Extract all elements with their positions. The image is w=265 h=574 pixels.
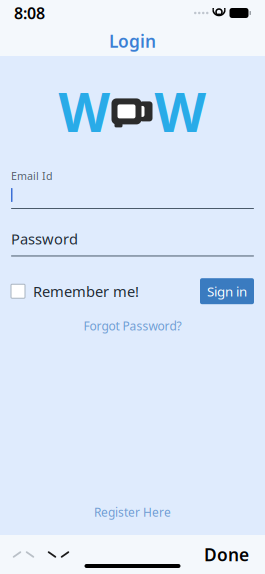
button[interactable]: Done xyxy=(194,535,259,574)
staticText: Login xyxy=(109,29,156,52)
button[interactable]: Remember me! xyxy=(11,277,139,305)
staticText: Register Here xyxy=(94,504,171,520)
button[interactable]: Previous field xyxy=(6,539,41,569)
staticText: Sign in xyxy=(207,282,247,300)
staticText: Remember me! xyxy=(33,281,139,301)
staticText: Forgot Password? xyxy=(83,318,181,334)
staticText: Password xyxy=(11,229,78,248)
button[interactable]: Login xyxy=(95,23,170,58)
staticText: W xyxy=(58,76,110,147)
button[interactable]: Sign in xyxy=(200,278,254,304)
button[interactable]: Forgot Password? xyxy=(73,314,191,338)
staticText: Done xyxy=(204,543,249,566)
staticText: Email Id xyxy=(11,169,53,183)
button[interactable]: Register Here xyxy=(82,499,183,525)
button[interactable]: Next field xyxy=(41,539,76,569)
staticText: 8:08 xyxy=(14,2,45,24)
staticText: W xyxy=(154,76,206,147)
